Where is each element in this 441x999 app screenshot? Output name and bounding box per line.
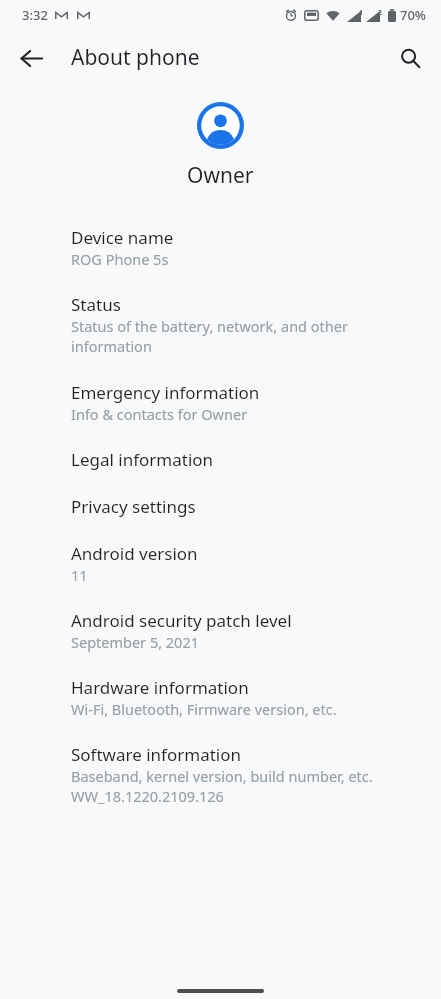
staticText: Hardware information [71,676,249,699]
button[interactable]: Hardware information [0,664,441,731]
staticText: WW_18.1220.2109.126 [71,786,224,806]
button[interactable]: Emergency information [0,369,441,436]
staticText: Legal information [71,448,214,471]
staticText: About phone [71,43,200,72]
staticText: Wi-Fi, Bluetooth, Firmware version, etc. [71,699,337,719]
staticText: Status [71,293,121,316]
button[interactable]: Search [388,36,432,80]
staticText: Info & contacts for Owner [71,404,248,424]
button[interactable]: Back [9,36,53,80]
staticText: Privacy settings [71,495,196,518]
staticText: Device name [71,226,174,249]
staticText: Android version [71,542,198,565]
staticText: 70% [400,6,426,24]
staticText: Owner [187,161,254,190]
staticText: Software information [71,743,241,766]
button[interactable]: Legal information [0,436,441,483]
button[interactable]: Privacy settings [0,483,441,530]
staticText: 3:32 [22,6,48,24]
button[interactable]: Status [0,281,441,369]
staticText: ROG Phone 5s [71,249,169,269]
staticText: 1 [359,8,364,18]
staticText: 11 [71,565,88,585]
staticText: Baseband, kernel version, build number, … [71,766,373,786]
staticText: Status of the battery, network, and othe… [71,316,389,357]
staticText: September 5, 2021 [71,632,200,652]
staticText: Android security patch level [71,609,292,632]
button[interactable]: Device name [0,214,441,281]
button[interactable]: Android security patch level [0,597,441,664]
button[interactable]: Android version [0,530,441,597]
button[interactable]: Software information [0,731,441,818]
staticText: 2 [378,8,383,18]
staticText: Emergency information [71,381,260,404]
